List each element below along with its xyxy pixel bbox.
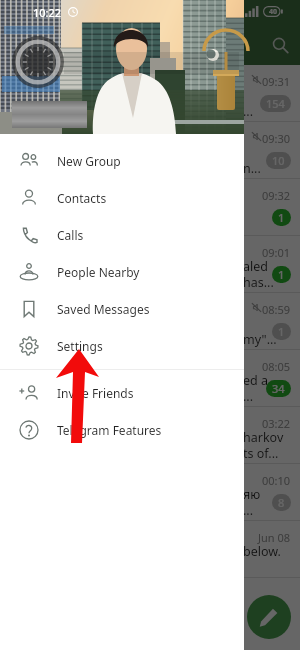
button[interactable]: New message bbox=[247, 595, 291, 639]
staticText: Saved Messages bbox=[57, 301, 150, 317]
staticText: n... bbox=[243, 160, 261, 177]
button[interactable]: Saved Messages bbox=[0, 290, 244, 327]
staticText: ed a bbox=[243, 372, 269, 389]
staticText: 10:22 bbox=[33, 5, 62, 20]
button[interactable]: Telegram Features bbox=[0, 411, 244, 448]
button[interactable]: Contacts bbox=[0, 179, 244, 216]
staticText: below. bbox=[243, 543, 281, 560]
staticText: 154 bbox=[266, 96, 285, 111]
button[interactable]: ... bbox=[0, 65, 300, 122]
staticText: 08:59 bbox=[262, 302, 291, 317]
staticText: ... bbox=[243, 502, 254, 519]
staticText: ... bbox=[243, 388, 254, 405]
button[interactable]: harkov bbox=[0, 407, 300, 464]
staticText: aled bbox=[243, 258, 268, 275]
staticText: 8 bbox=[278, 495, 285, 510]
button[interactable]: Search bbox=[267, 32, 293, 58]
staticText: People Nearby bbox=[57, 264, 140, 280]
staticText: Settings bbox=[57, 338, 103, 354]
staticText: 03:22 bbox=[262, 416, 291, 431]
staticText: has... bbox=[243, 274, 274, 291]
staticText: Jun 08 bbox=[258, 530, 291, 545]
staticText: 09:01 bbox=[262, 245, 291, 260]
staticText: 09:31 bbox=[262, 74, 291, 89]
button[interactable]: Settings bbox=[0, 327, 244, 364]
staticText: New Group bbox=[57, 153, 121, 169]
staticText: 08:05 bbox=[262, 359, 291, 374]
button[interactable]: my"... bbox=[0, 293, 300, 350]
button[interactable]: яю bbox=[0, 464, 300, 521]
staticText: 10 bbox=[272, 153, 285, 168]
staticText: Invite Friends bbox=[57, 385, 134, 401]
staticText: ts of... bbox=[243, 445, 279, 462]
button[interactable]: aled bbox=[0, 236, 300, 293]
staticText: Telegram Features bbox=[57, 422, 162, 438]
staticText: 00:10 bbox=[262, 473, 291, 488]
button[interactable]: People Nearby bbox=[0, 253, 244, 290]
button[interactable]: Invite Friends bbox=[0, 374, 244, 411]
staticText: 34 bbox=[272, 381, 285, 396]
staticText: яю bbox=[243, 486, 261, 503]
staticText: Calls bbox=[57, 227, 84, 243]
button[interactable]: 09:32 bbox=[0, 179, 300, 236]
button[interactable]: Calls bbox=[0, 216, 244, 253]
button[interactable]: New Group bbox=[0, 142, 244, 179]
staticText: 1 bbox=[278, 210, 285, 225]
staticText: 1 bbox=[278, 267, 285, 282]
staticText: my"... bbox=[243, 331, 277, 348]
staticText: Contacts bbox=[57, 190, 107, 206]
button[interactable]: ed a bbox=[0, 350, 300, 407]
staticText: 1 bbox=[278, 324, 285, 339]
button[interactable]: n... bbox=[0, 122, 300, 179]
staticText: harkov bbox=[243, 429, 284, 446]
button[interactable]: below. bbox=[0, 521, 300, 578]
staticText: 09:30 bbox=[262, 131, 291, 146]
staticText: ... bbox=[243, 103, 254, 120]
staticText: 09:32 bbox=[262, 188, 291, 203]
staticText: 40 bbox=[269, 7, 278, 17]
